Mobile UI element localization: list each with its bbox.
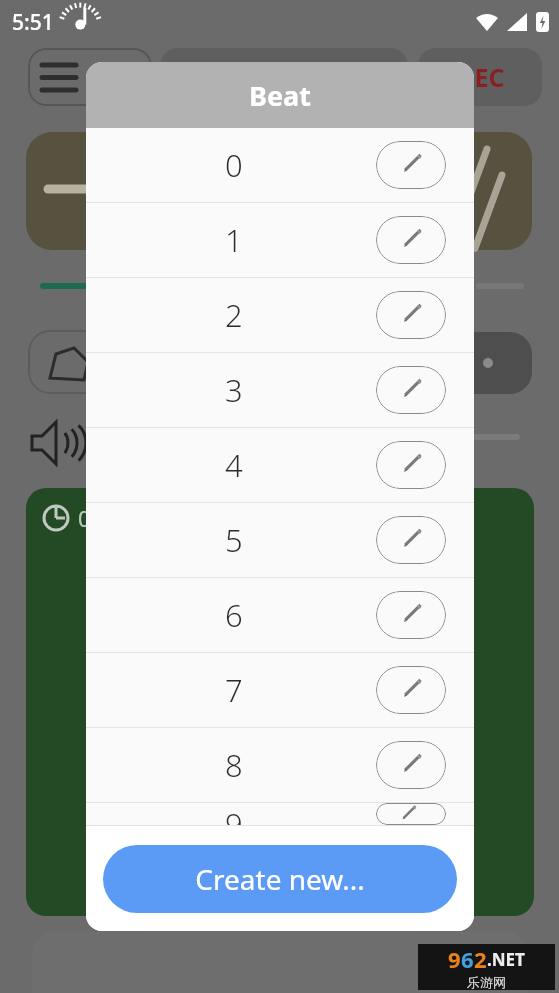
button[interactable]: Edit beat 7 xyxy=(376,666,446,714)
staticText: 乐游网 xyxy=(467,974,506,990)
button[interactable]: 3 xyxy=(86,353,474,428)
button[interactable]: Edit beat 0 xyxy=(376,141,446,189)
button[interactable]: 6 xyxy=(86,578,474,653)
button[interactable]: 8 xyxy=(86,728,474,803)
staticText: 1 xyxy=(225,219,243,261)
button[interactable]: Edit beat 5 xyxy=(376,516,446,564)
staticText: Beat xyxy=(249,77,311,114)
button[interactable]: Edit beat 4 xyxy=(376,441,446,489)
staticText: 5 xyxy=(225,519,243,561)
button[interactable]: Create new... xyxy=(103,845,457,913)
button[interactable]: 2 xyxy=(86,278,474,353)
button[interactable]: Edit beat 2 xyxy=(376,291,446,339)
button[interactable]: Edit beat 9 xyxy=(376,803,446,825)
staticText: 3 xyxy=(225,369,243,411)
staticText: .NET xyxy=(487,948,525,971)
button[interactable]: Edit beat 6 xyxy=(376,591,446,639)
staticText: 6 xyxy=(461,944,474,974)
staticText: 0 xyxy=(225,144,243,186)
button[interactable]: 4 xyxy=(86,428,474,503)
button[interactable]: 5 xyxy=(86,503,474,578)
staticText: 6 xyxy=(225,594,243,636)
staticText: 7 xyxy=(225,669,243,711)
staticText: Create new... xyxy=(195,860,365,898)
staticText: 9 xyxy=(225,803,243,825)
staticText: 9 xyxy=(448,944,461,974)
staticText: REC xyxy=(458,60,505,94)
button[interactable]: 1 xyxy=(86,203,474,278)
button[interactable]: Edit beat 3 xyxy=(376,366,446,414)
staticText: 8 xyxy=(225,744,243,786)
staticText: 5:51 xyxy=(12,8,54,37)
button[interactable]: 7 xyxy=(86,653,474,728)
staticText: 2 xyxy=(474,944,487,974)
button[interactable]: 0 xyxy=(86,128,474,203)
staticText: 0 xyxy=(78,503,91,533)
button[interactable]: 9 xyxy=(86,803,474,826)
staticText: 2 xyxy=(225,294,243,336)
button[interactable]: Edit beat 1 xyxy=(376,216,446,264)
staticText: 4 xyxy=(225,444,243,486)
button[interactable]: Edit beat 8 xyxy=(376,741,446,789)
